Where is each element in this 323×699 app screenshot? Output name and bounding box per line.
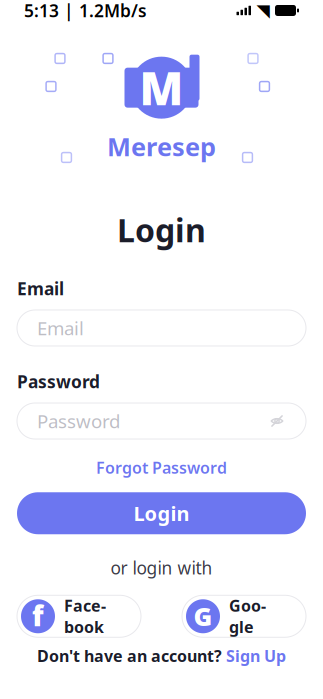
button[interactable]: Email [17,310,306,346]
staticText: Facebook [64,595,106,637]
staticText: Password [17,370,100,393]
staticText: M [139,58,183,118]
button[interactable]: G [182,595,306,637]
staticText: Email [37,316,84,340]
staticText: Login [117,208,206,251]
button[interactable]: Forgot Password [17,439,306,488]
staticText: f [32,597,44,634]
staticText: Email [17,277,64,300]
button[interactable]: Password [17,403,306,439]
staticText: Google [229,595,266,637]
staticText: Forgot Password [96,457,227,478]
staticText: Login [133,500,189,527]
button[interactable]: f [17,595,141,637]
staticText: or login with [110,556,212,579]
staticText: Don't have an account? [37,645,222,666]
staticText: Meresep [107,130,216,163]
staticText: 5:13 | 1.2Mb/s [24,0,147,22]
staticText: G [193,599,212,633]
staticText: ◥ [256,1,269,20]
button[interactable]: Login [17,492,306,534]
staticText: Password [37,409,120,433]
button[interactable]: Don't have an account? [0,645,323,666]
staticText: Sign Up [226,645,286,666]
